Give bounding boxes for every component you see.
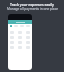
- staticText: Manage all payments in one place: [7, 7, 58, 11]
- staticText: Track your expenses easily: [10, 2, 54, 7]
